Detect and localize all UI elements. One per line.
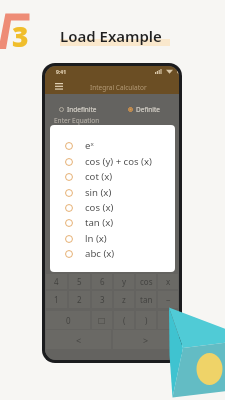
button[interactable]: tan (x) <box>50 215 175 230</box>
staticText: cos <box>140 276 153 287</box>
button[interactable]: Next <box>113 330 178 349</box>
button[interactable]: x <box>158 274 178 289</box>
staticText: cot (x) <box>85 170 113 183</box>
staticText: ( <box>123 315 126 326</box>
button[interactable]: Menu <box>52 80 66 92</box>
button[interactable] <box>158 311 178 329</box>
button[interactable]: tan <box>136 291 156 308</box>
staticText: 5 <box>77 276 82 287</box>
staticText: > <box>143 334 149 346</box>
staticText: sin (x) <box>85 186 112 199</box>
staticText: tan (x) <box>85 216 114 229</box>
button[interactable]: 5 <box>69 274 90 289</box>
button[interactable]: □ <box>92 311 112 329</box>
staticText: 9:41 <box>56 69 66 76</box>
staticText: 4 <box>54 276 59 287</box>
button[interactable]: Definite <box>128 103 161 116</box>
staticText: 6 <box>100 276 105 287</box>
button[interactable]: 1 <box>46 291 67 308</box>
staticText: x <box>166 276 171 287</box>
staticText: eˣ <box>85 139 94 152</box>
staticText: − <box>166 294 171 305</box>
button[interactable]: cot (x) <box>50 169 175 184</box>
staticText: tan <box>140 294 153 305</box>
button[interactable]: Indefinite <box>59 103 97 116</box>
staticText: Integral Calculator <box>90 83 147 92</box>
staticText: cos (y) + cos (x) <box>85 155 152 168</box>
button[interactable]: sin (x) <box>50 185 175 200</box>
staticText: ) <box>145 315 148 326</box>
staticText: cos (x) <box>85 201 114 214</box>
staticText: 0 <box>66 315 71 326</box>
button[interactable]: ( <box>114 311 134 329</box>
button[interactable]: y <box>114 274 134 289</box>
button[interactable]: z <box>114 291 134 308</box>
button[interactable]: cos (x) <box>50 200 175 215</box>
button[interactable]: eˣ <box>50 138 175 153</box>
staticText: Enter Equation <box>54 116 100 125</box>
button[interactable]: 2 <box>69 291 90 308</box>
button[interactable]: cos (y) + cos (x) <box>50 154 175 169</box>
staticText: 3 <box>100 294 105 305</box>
staticText: □ <box>98 316 106 325</box>
staticText: Definite <box>136 105 161 114</box>
staticText: y <box>122 276 127 287</box>
button[interactable]: 3 <box>92 291 112 308</box>
button[interactable]: ln (x) <box>50 231 175 246</box>
staticText: ln (x) <box>85 232 107 245</box>
staticText: Indefinite <box>67 105 97 114</box>
button[interactable]: 4 <box>46 274 67 289</box>
staticText: 1 <box>54 294 59 305</box>
staticText: 3 <box>12 17 29 55</box>
staticText: abc (x) <box>85 247 115 260</box>
button[interactable]: 6 <box>92 274 112 289</box>
staticText: < <box>76 334 82 346</box>
staticText: z <box>122 294 126 305</box>
staticText: 2 <box>77 294 82 305</box>
staticText: Load Example <box>60 26 162 46</box>
button[interactable]: abc (x) <box>50 246 175 261</box>
button[interactable]: cos <box>136 274 156 289</box>
button[interactable]: ) <box>136 311 156 329</box>
button[interactable]: 0 <box>46 311 90 329</box>
